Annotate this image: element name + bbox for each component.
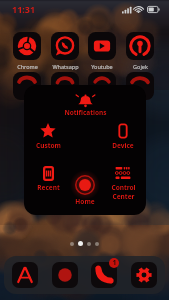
staticText: Gojek <box>133 63 148 70</box>
staticText: Notifications <box>64 108 107 117</box>
button[interactable]: Settings <box>131 262 157 288</box>
button[interactable]: Whatsapp <box>51 32 79 70</box>
staticText: 11:31 <box>12 3 36 15</box>
button[interactable] <box>88 72 116 100</box>
button[interactable]: Photos <box>52 262 78 288</box>
button[interactable]: Gojek <box>126 32 154 70</box>
button[interactable] <box>13 72 41 100</box>
staticText: 1 <box>112 258 117 268</box>
staticText: Home <box>75 197 95 206</box>
staticText: Whatsapp <box>52 63 79 70</box>
staticText: Control Center <box>111 183 136 201</box>
button[interactable]: Recent <box>26 166 70 199</box>
button[interactable]: Custom <box>26 123 70 157</box>
staticText: Youtube <box>91 63 113 70</box>
button[interactable] <box>126 72 154 100</box>
staticText: Device <box>112 141 134 150</box>
button[interactable]: App Store <box>12 262 38 288</box>
button[interactable]: Control Center <box>101 165 145 199</box>
button[interactable]: Home <box>63 175 107 213</box>
staticText: Chrome <box>17 63 38 70</box>
button[interactable]: Phone <box>91 262 117 288</box>
staticText: Custom <box>36 141 61 150</box>
button[interactable]: Chrome <box>13 32 41 70</box>
staticText: Recent <box>37 183 60 192</box>
button[interactable]: Device <box>101 123 145 157</box>
button[interactable]: Youtube <box>88 32 116 70</box>
button[interactable]: Notifications <box>57 94 113 124</box>
button[interactable] <box>51 72 79 100</box>
